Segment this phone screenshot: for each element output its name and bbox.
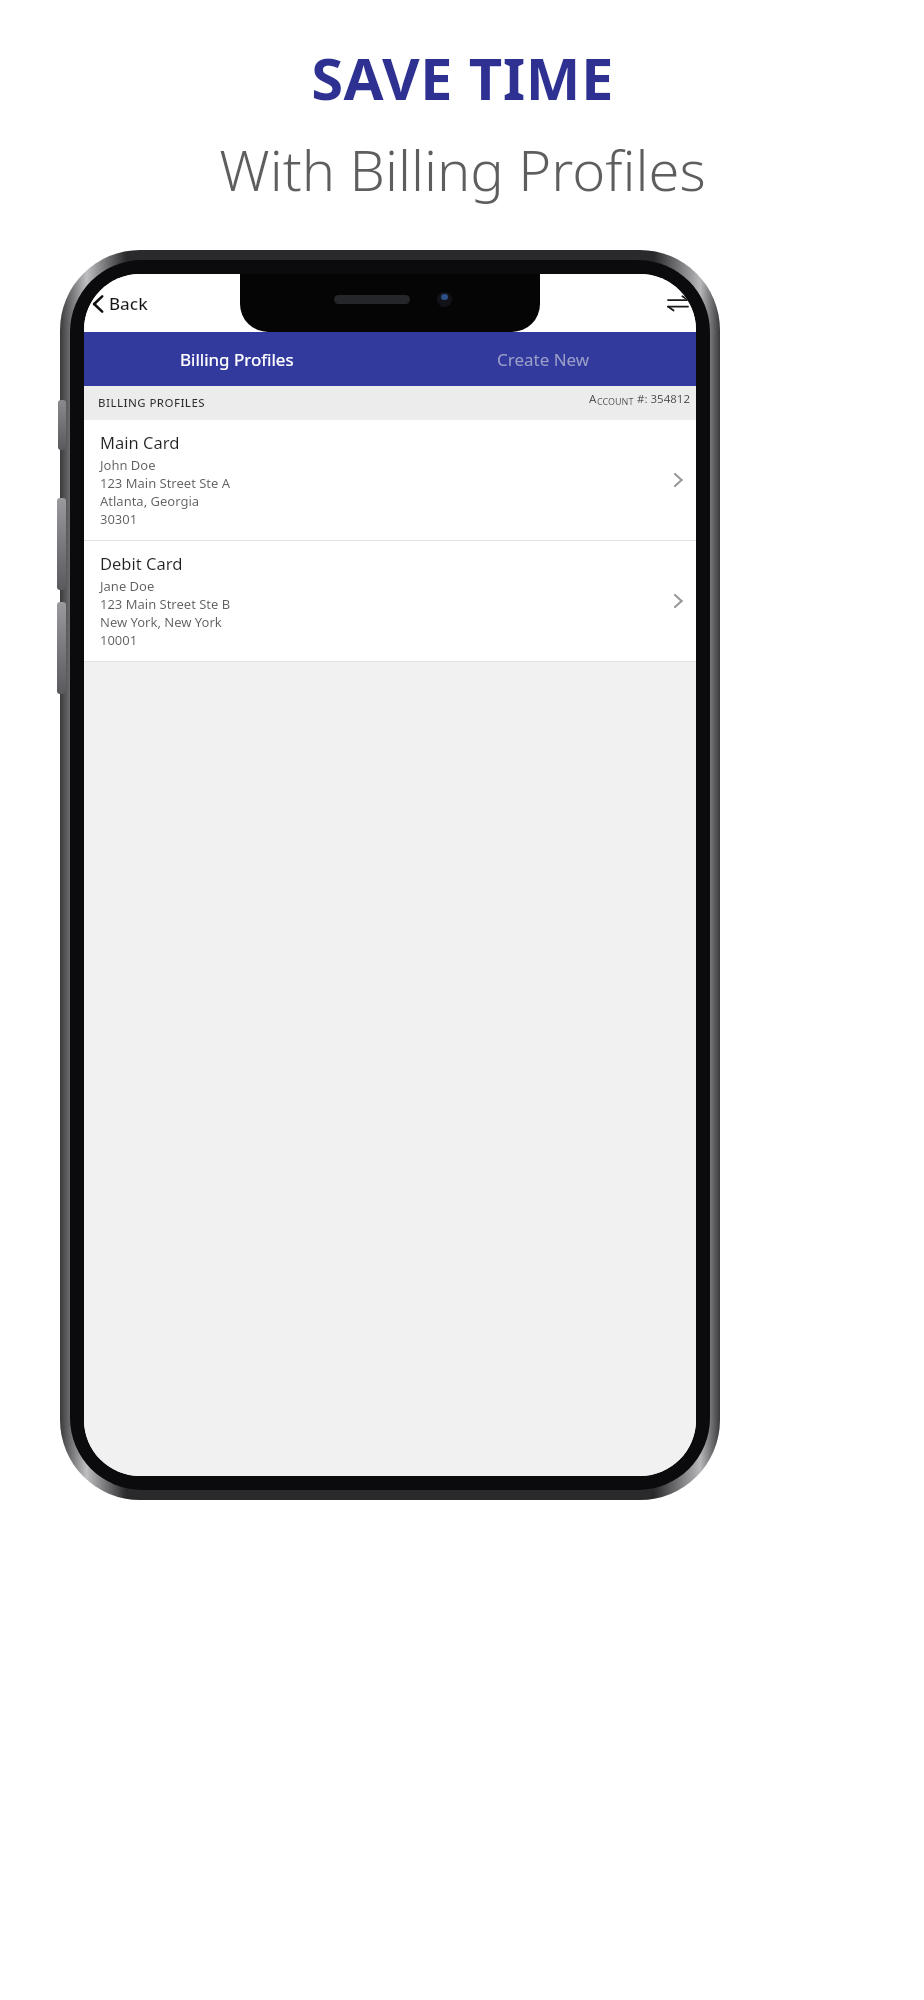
staticText: SAVE TIME (311, 38, 614, 117)
staticText: With Billing Profiles (219, 131, 706, 207)
staticText: BILLING PROFILES (98, 395, 205, 411)
staticText: 123 Main Street Ste A (100, 474, 231, 492)
staticText: Billing Profiles (180, 348, 294, 371)
staticText: A (589, 391, 597, 407)
staticText: 10001 (100, 631, 138, 649)
staticText: New York, New York (100, 613, 222, 631)
staticText: Create New (497, 348, 590, 371)
staticText: 30301 (100, 510, 138, 528)
staticText: John Doe (100, 456, 156, 474)
staticText: Main Card (100, 431, 180, 453)
button[interactable]: Debit Card (84, 541, 696, 661)
button[interactable]: Back (84, 286, 160, 321)
button[interactable]: Create New (390, 332, 696, 386)
button[interactable]: Billing Profiles (84, 332, 390, 386)
staticText: Jane Doe (100, 577, 155, 595)
staticText: #: 354812 (634, 391, 690, 407)
staticText: Atlanta, Georgia (100, 492, 200, 510)
staticText: Debit Card (100, 552, 183, 574)
staticText: CCOUNT (597, 395, 634, 407)
button[interactable]: Transfer (660, 286, 696, 320)
staticText: 123 Main Street Ste B (100, 595, 231, 613)
staticText: Back (109, 292, 148, 315)
button[interactable]: Main Card (84, 420, 696, 540)
